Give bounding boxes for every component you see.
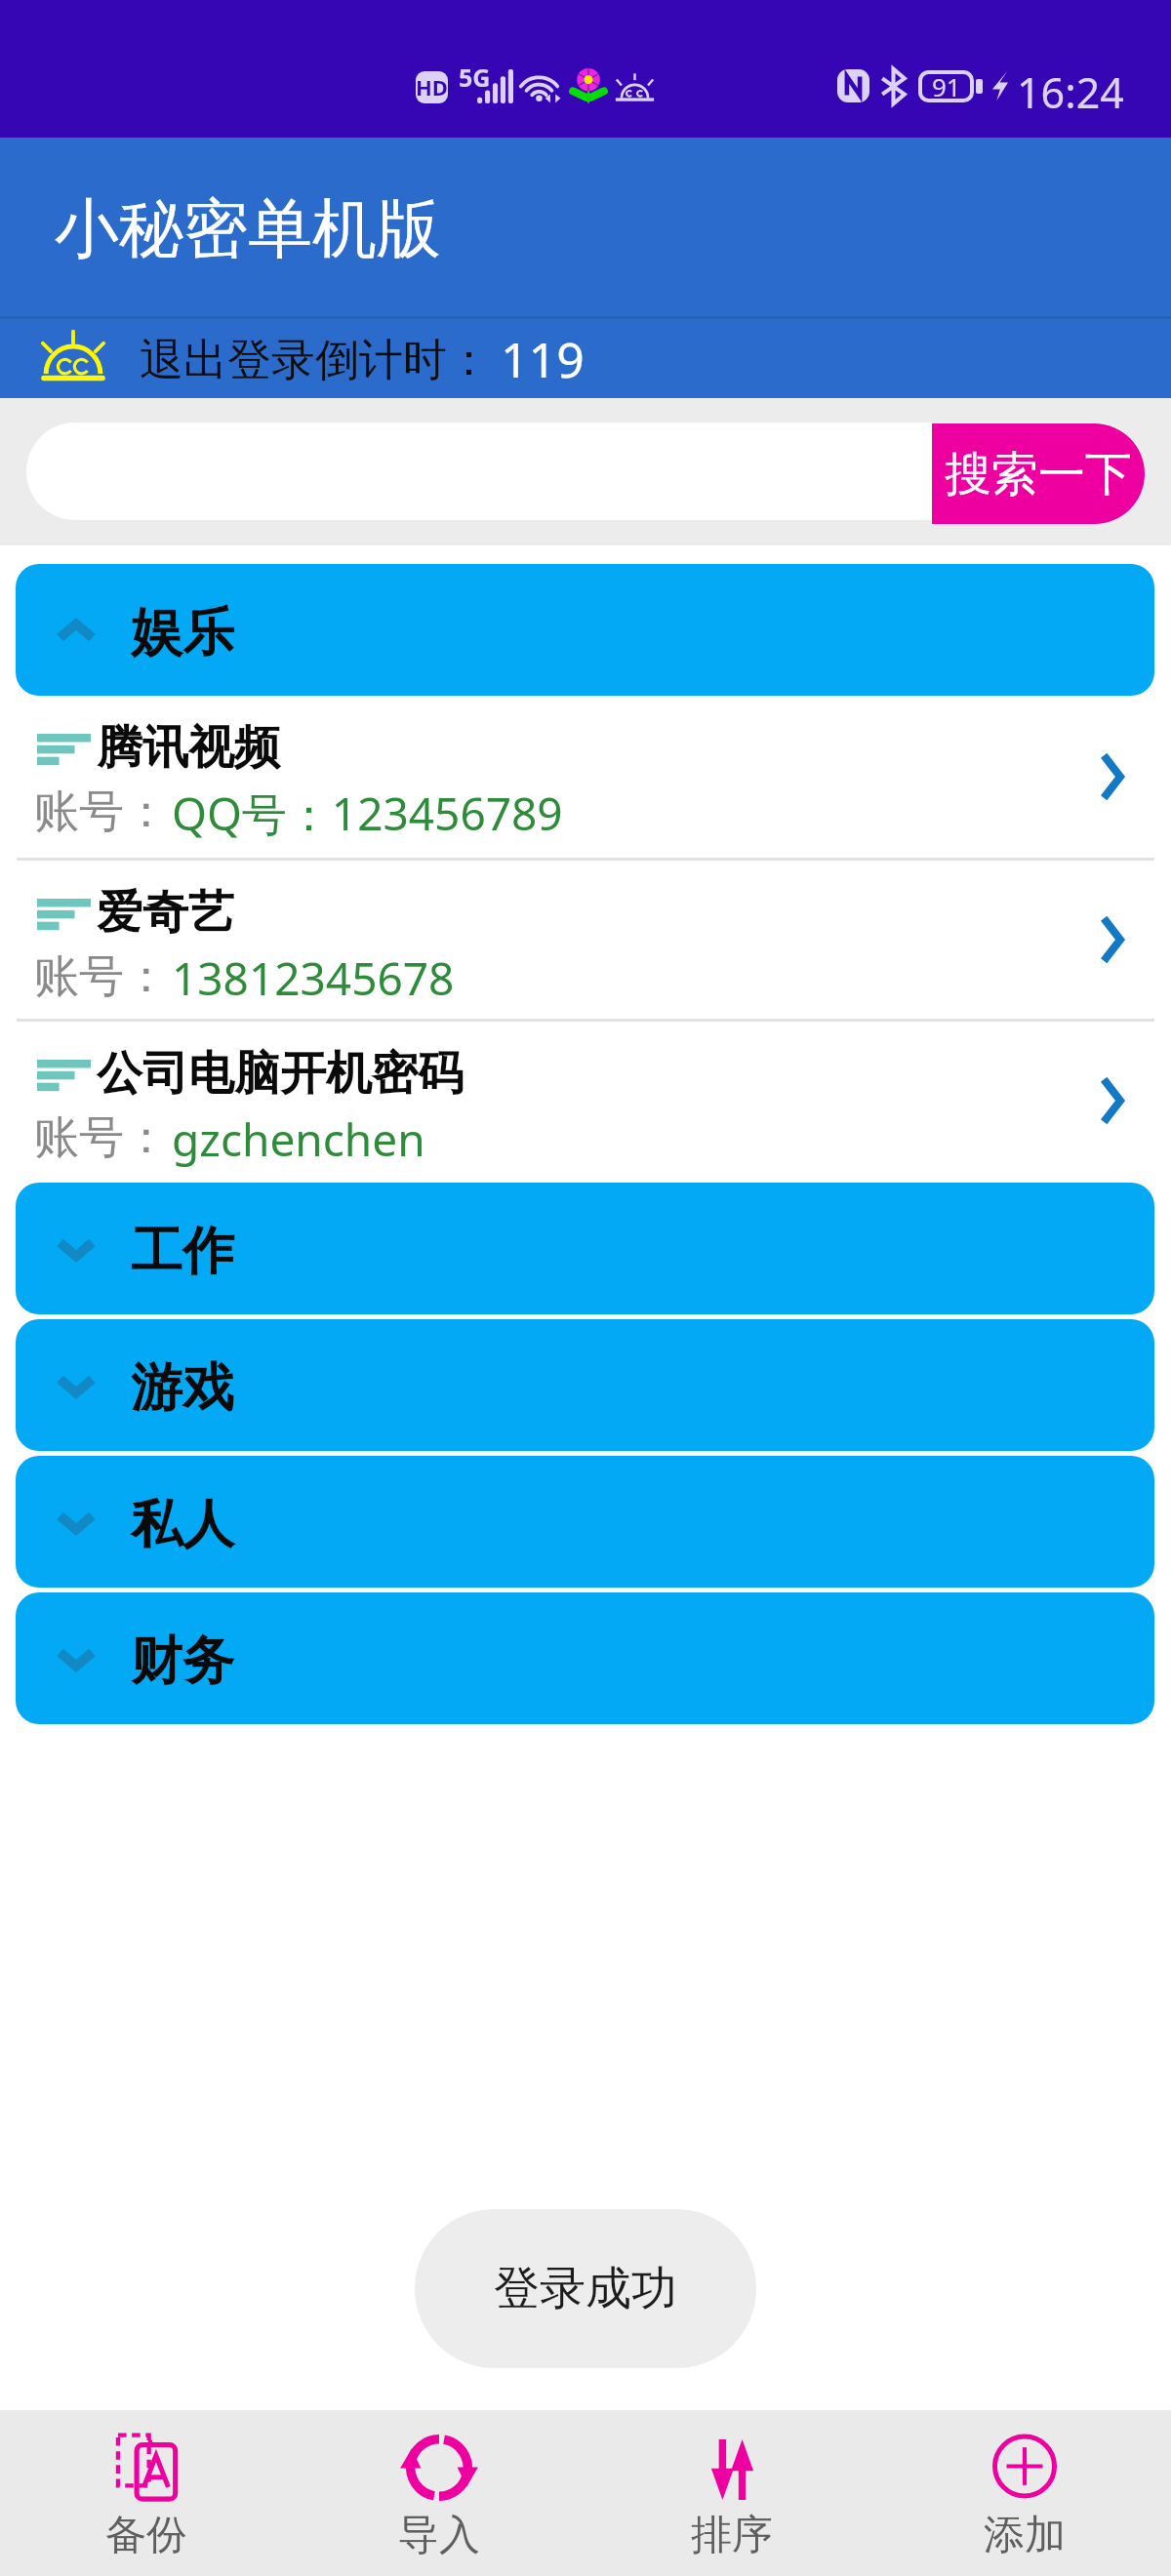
button[interactable]: 私人 xyxy=(16,1456,1154,1588)
staticText: 备份 xyxy=(105,2510,187,2561)
button[interactable]: Import xyxy=(293,2410,585,2576)
staticText: 5G xyxy=(459,60,491,94)
button[interactable]: 爱奇艺 xyxy=(0,861,1171,1019)
staticText: 私人 xyxy=(131,1492,234,1557)
staticText: 119 xyxy=(501,326,585,392)
staticText: QQ号：123456789 xyxy=(172,783,563,844)
staticText: 小秘密单机版 xyxy=(55,188,441,269)
button[interactable]: Backup xyxy=(0,2410,293,2576)
button[interactable]: 游戏 xyxy=(16,1319,1154,1451)
staticText: 搜索一下 xyxy=(945,445,1132,503)
staticText: 91 xyxy=(932,69,961,101)
button[interactable]: Add xyxy=(878,2410,1171,2576)
staticText: 退出登录倒计时： xyxy=(140,333,491,388)
staticText: 16:24 xyxy=(1017,63,1124,121)
button[interactable]: 搜索一下 xyxy=(932,423,1145,524)
staticText: 爱奇艺 xyxy=(97,884,234,942)
button[interactable]: 腾讯视频 xyxy=(0,696,1171,858)
staticText: HD xyxy=(416,72,448,101)
staticText: 排序 xyxy=(691,2510,773,2561)
staticText: 导入 xyxy=(398,2510,480,2561)
button[interactable]: 工作 xyxy=(16,1183,1154,1314)
button[interactable]: Sort xyxy=(585,2410,878,2576)
staticText: 财务 xyxy=(131,1629,234,1694)
button[interactable]: 财务 xyxy=(16,1592,1154,1724)
staticText: 腾讯视频 xyxy=(97,719,280,777)
staticText: gzchenchen xyxy=(172,1108,425,1170)
button[interactable] xyxy=(26,423,1145,520)
staticText: 添加 xyxy=(984,2510,1066,2561)
staticText: 账号： xyxy=(34,1109,169,1166)
staticText: 公司电脑开机密码 xyxy=(97,1045,464,1103)
staticText: 账号： xyxy=(34,784,169,840)
button[interactable]: 公司电脑开机密码 xyxy=(0,1022,1171,1180)
button[interactable]: 娱乐 xyxy=(16,564,1154,696)
staticText: 工作 xyxy=(131,1219,234,1284)
staticText: 娱乐 xyxy=(131,600,234,665)
staticText: 13812345678 xyxy=(172,947,455,1009)
staticText: 游戏 xyxy=(131,1355,234,1421)
staticText: 登录成功 xyxy=(494,2260,677,2317)
staticText: 账号： xyxy=(34,948,169,1005)
